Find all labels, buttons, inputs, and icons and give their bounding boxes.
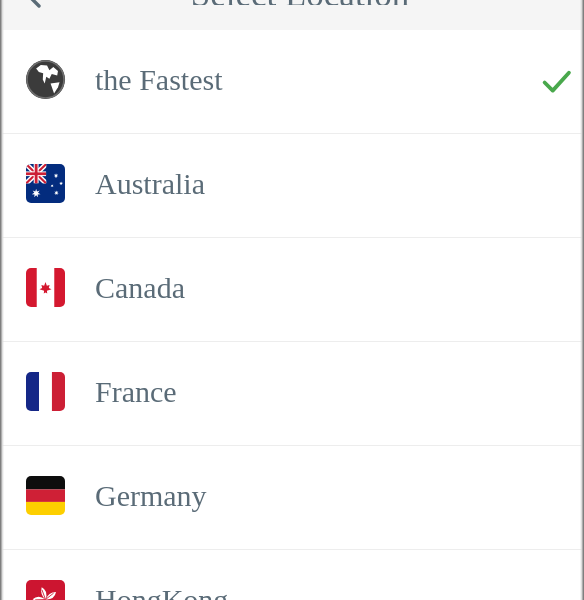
button[interactable]: Germany [0,446,584,549]
button[interactable]: Back [3,0,55,11]
staticText: the Fastest [95,63,223,96]
staticText: France [95,375,177,408]
button[interactable]: Canada [0,238,584,341]
staticText: Australia [95,167,205,200]
button[interactable]: the Fastest [0,30,584,133]
button[interactable]: France [0,342,584,445]
other: Selected [534,60,578,104]
button[interactable]: HongKong [0,550,584,600]
staticText: Germany [95,479,207,512]
staticText: Canada [95,271,185,304]
button[interactable]: Australia [0,134,584,237]
staticText: Select Location [8,0,584,5]
staticText: HongKong [95,583,229,600]
